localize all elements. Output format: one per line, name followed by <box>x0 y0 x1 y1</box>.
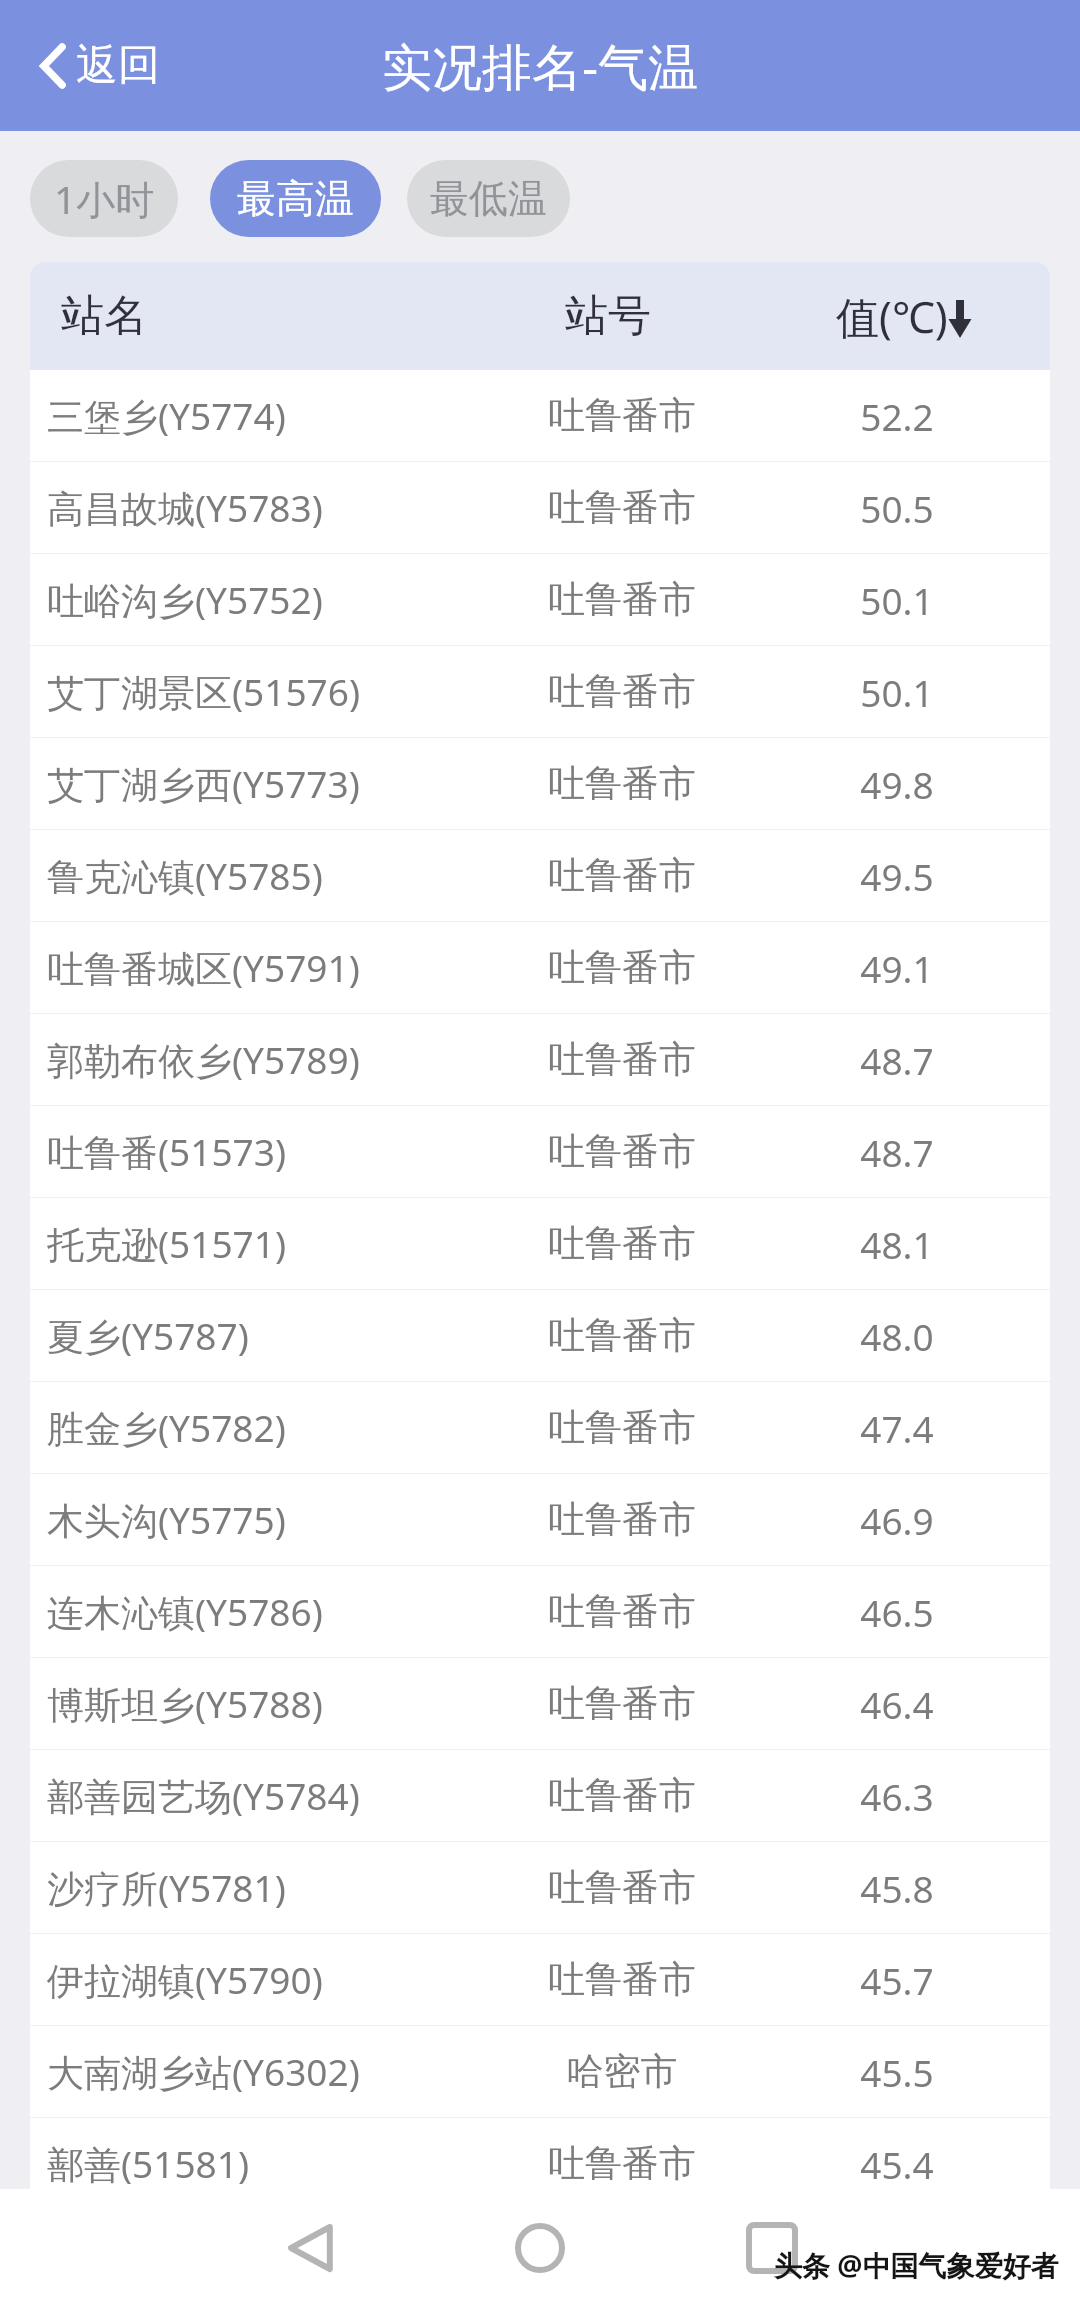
staticText: 值(℃) <box>836 287 948 346</box>
staticText: 45.7 <box>744 1955 1050 2005</box>
staticText: 吐鲁番市 <box>500 484 744 531</box>
staticText: 吐鲁番市 <box>500 1220 744 1267</box>
button[interactable]: Back <box>265 2203 355 2293</box>
staticText: 胜金乡(Y5782) <box>47 1402 500 1453</box>
staticText: 吐鲁番市 <box>500 392 744 439</box>
staticText: 48.0 <box>744 1311 1050 1361</box>
staticText: 1小时 <box>54 172 155 225</box>
staticText: 木头沟(Y5775) <box>47 1494 500 1545</box>
button[interactable]: 吐鲁番(51573) <box>30 1106 1050 1197</box>
staticText: 46.3 <box>744 1771 1050 1821</box>
staticText: 49.1 <box>744 943 1050 993</box>
button[interactable]: 托克逊(51571) <box>30 1198 1050 1289</box>
button[interactable]: 伊拉湖镇(Y5790) <box>30 1934 1050 2025</box>
staticText: 吐鲁番(51573) <box>47 1126 500 1177</box>
button[interactable]: 木头沟(Y5775) <box>30 1474 1050 1565</box>
staticText: 45.4 <box>744 2139 1050 2189</box>
staticText: 46.4 <box>744 1679 1050 1729</box>
staticText: 伊拉湖镇(Y5790) <box>47 1954 500 2005</box>
staticText: 吐鲁番市 <box>500 944 744 991</box>
button[interactable]: 吐峪沟乡(Y5752) <box>30 554 1050 645</box>
staticText: 49.5 <box>744 851 1050 901</box>
button[interactable]: 郭勒布依乡(Y5789) <box>30 1014 1050 1105</box>
staticText: 吐鲁番市 <box>500 1680 744 1727</box>
staticText: 郭勒布依乡(Y5789) <box>47 1034 500 1085</box>
staticText: 鲁克沁镇(Y5785) <box>47 850 500 901</box>
staticText: 高昌故城(Y5783) <box>47 482 500 533</box>
button[interactable]: 最高温 <box>210 160 381 237</box>
staticText: 最低温 <box>430 174 547 223</box>
button[interactable]: 鄯善(51581) <box>30 2118 1050 2209</box>
staticText: 哈密市 <box>500 2048 744 2095</box>
staticText: 46.5 <box>744 1587 1050 1637</box>
button[interactable]: 最低温 <box>407 160 570 237</box>
staticText: 47.4 <box>744 1403 1050 1453</box>
staticText: 鄯善(51581) <box>47 2138 500 2189</box>
staticText: 鄯善园艺场(Y5784) <box>47 1770 500 1821</box>
staticText: 52.2 <box>744 391 1050 441</box>
button[interactable]: 1小时 <box>30 160 178 237</box>
staticText: 吐鲁番市 <box>500 1864 744 1911</box>
staticText: 吐鲁番市 <box>500 668 744 715</box>
staticText: 48.7 <box>744 1035 1050 1085</box>
staticText: 吐鲁番市 <box>500 1772 744 1819</box>
staticText: 沙疗所(Y5781) <box>47 1862 500 1913</box>
button[interactable]: 返回 <box>27 25 174 106</box>
staticText: 大南湖乡站(Y6302) <box>47 2046 500 2097</box>
staticText: 45.5 <box>744 2047 1050 2097</box>
staticText: 艾丁湖乡西(Y5773) <box>47 758 500 809</box>
staticText: 50.5 <box>744 483 1050 533</box>
button[interactable]: 大南湖乡站(Y6302) <box>30 2026 1050 2117</box>
staticText: 最高温 <box>237 174 354 223</box>
staticText: 实况排名-气温 <box>382 32 699 100</box>
button[interactable]: Home <box>495 2203 585 2293</box>
button[interactable]: 鄯善园艺场(Y5784) <box>30 1750 1050 1841</box>
button[interactable]: 胜金乡(Y5782) <box>30 1382 1050 1473</box>
staticText: 连木沁镇(Y5786) <box>47 1586 500 1637</box>
staticText: 三堡乡(Y5774) <box>47 390 500 441</box>
staticText: 49.8 <box>744 759 1050 809</box>
staticText: 50.1 <box>744 667 1050 717</box>
staticText: 50.1 <box>744 575 1050 625</box>
staticText: 48.1 <box>744 1219 1050 1269</box>
button[interactable]: 高昌故城(Y5783) <box>30 462 1050 553</box>
staticText: 站号 <box>486 289 730 343</box>
staticText: 头条 @中国气象爱好者 <box>774 2246 1059 2284</box>
staticText: 吐鲁番市 <box>500 1588 744 1635</box>
button[interactable]: 艾丁湖景区(51576) <box>30 646 1050 737</box>
staticText: 吐鲁番市 <box>500 576 744 623</box>
staticText: 吐鲁番城区(Y5791) <box>47 942 500 993</box>
button[interactable]: Recents <box>727 2203 817 2293</box>
staticText: 吐鲁番市 <box>500 1128 744 1175</box>
staticText: 45.8 <box>744 1863 1050 1913</box>
staticText: 吐鲁番市 <box>500 2140 744 2187</box>
staticText: 夏乡(Y5787) <box>47 1310 500 1361</box>
staticText: 吐鲁番市 <box>500 1312 744 1359</box>
button[interactable]: 沙疗所(Y5781) <box>30 1842 1050 1933</box>
button[interactable]: 鲁克沁镇(Y5785) <box>30 830 1050 921</box>
staticText: 吐鲁番市 <box>500 1036 744 1083</box>
staticText: 站名 <box>61 289 500 343</box>
staticText: 返回 <box>76 39 160 92</box>
staticText: 吐鲁番市 <box>500 1404 744 1451</box>
button[interactable]: 艾丁湖乡西(Y5773) <box>30 738 1050 829</box>
button[interactable]: 夏乡(Y5787) <box>30 1290 1050 1381</box>
staticText: 吐鲁番市 <box>500 1496 744 1543</box>
button[interactable]: 连木沁镇(Y5786) <box>30 1566 1050 1657</box>
staticText: 46.9 <box>744 1495 1050 1545</box>
staticText: 艾丁湖景区(51576) <box>47 666 500 717</box>
staticText: 吐峪沟乡(Y5752) <box>47 574 500 625</box>
staticText: 吐鲁番市 <box>500 852 744 899</box>
button[interactable]: 吐鲁番城区(Y5791) <box>30 922 1050 1013</box>
button[interactable]: 三堡乡(Y5774) <box>30 370 1050 461</box>
staticText: 吐鲁番市 <box>500 1956 744 2003</box>
staticText: 博斯坦乡(Y5788) <box>47 1678 500 1729</box>
staticText: 吐鲁番市 <box>500 760 744 807</box>
staticText: 48.7 <box>744 1127 1050 1177</box>
button[interactable]: 博斯坦乡(Y5788) <box>30 1658 1050 1749</box>
staticText: 托克逊(51571) <box>47 1218 500 1269</box>
